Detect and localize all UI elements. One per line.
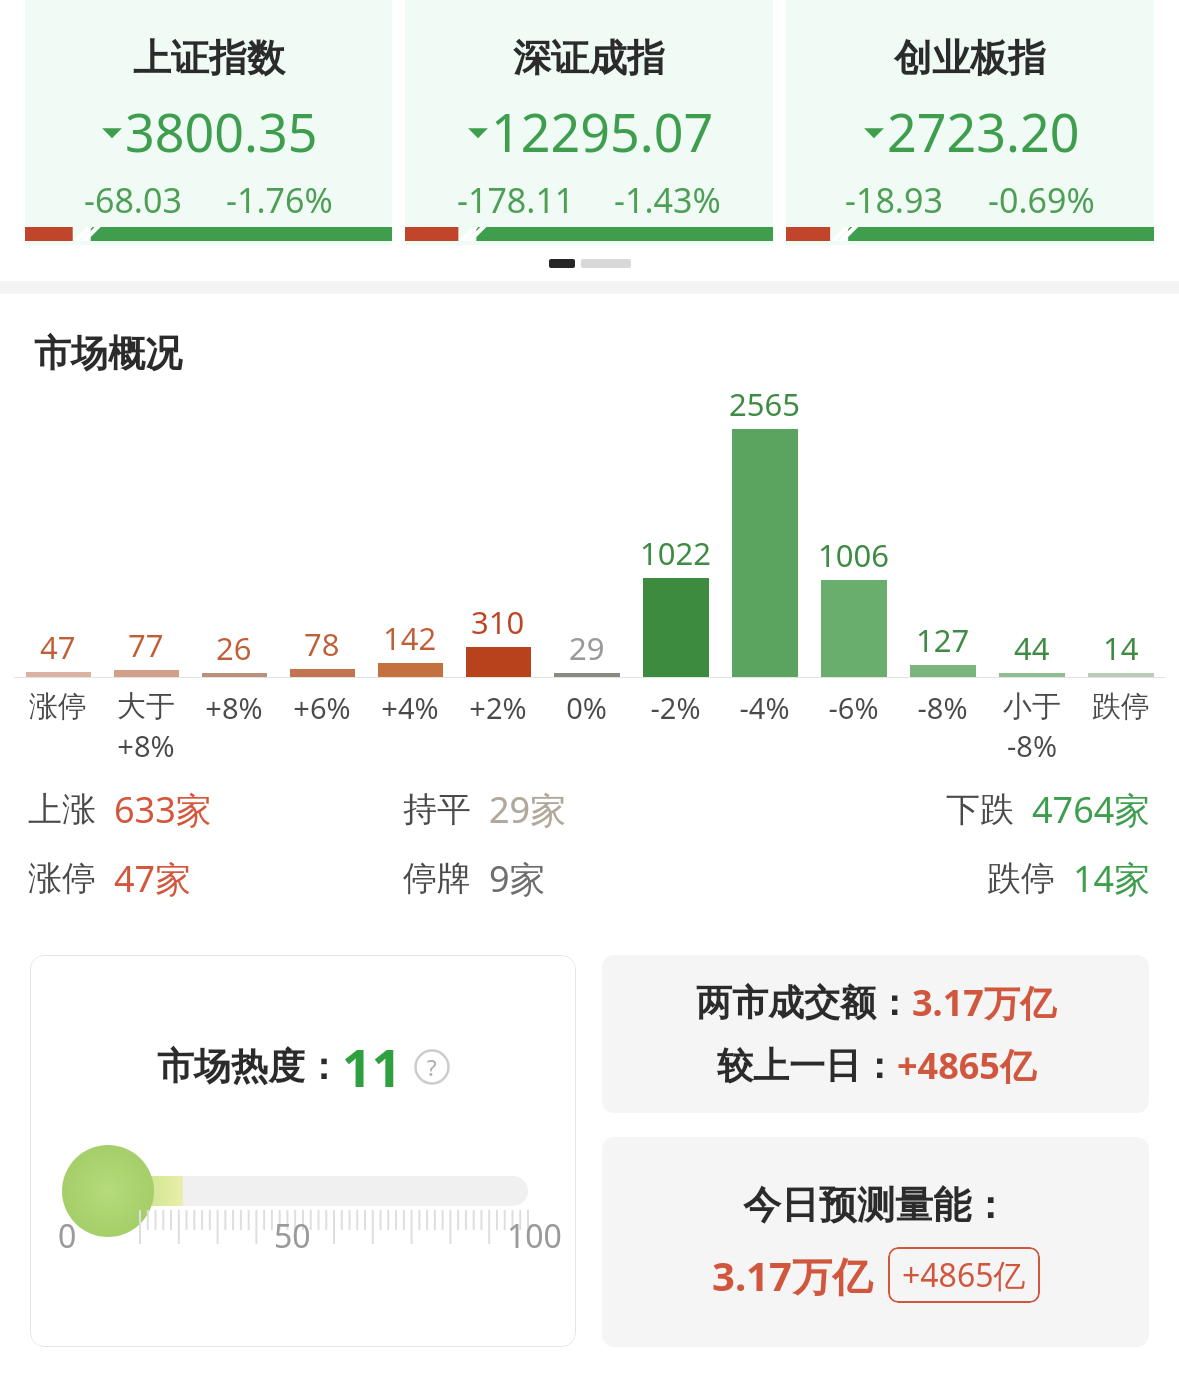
staticText: 创业板指: [894, 34, 1046, 82]
staticText: 0: [58, 1214, 77, 1258]
staticText: 100: [507, 1214, 562, 1258]
staticText: 47家: [114, 854, 192, 903]
staticText: -1.76%: [226, 177, 333, 223]
staticText: 小于 -8%: [1003, 688, 1061, 765]
staticText: -6%: [828, 688, 879, 727]
staticText: 29: [569, 627, 605, 669]
staticText: 142: [383, 617, 437, 659]
button[interactable]: 今日预测量能：: [602, 1137, 1149, 1347]
staticText: 跌停: [1092, 688, 1150, 725]
staticText: 3.17万亿: [712, 1248, 872, 1303]
staticText: 上证指数: [133, 34, 285, 82]
staticText: 12295.07: [491, 96, 714, 167]
staticText: -18.93: [845, 177, 943, 223]
staticText: 涨停: [29, 688, 87, 725]
staticText: +4865亿: [897, 1041, 1036, 1090]
staticText: 市场概况: [34, 330, 182, 377]
staticText: -178.11: [457, 177, 575, 223]
staticText: 涨停: [28, 857, 96, 900]
staticText: -8%: [917, 688, 968, 727]
staticText: 深证成指: [513, 34, 665, 82]
staticText: 持平: [403, 788, 471, 831]
staticText: 77: [128, 624, 164, 666]
staticText: 14: [1103, 627, 1139, 669]
staticText: 2565: [729, 383, 800, 425]
staticText: 2723.20: [887, 96, 1080, 167]
staticText: 127: [916, 619, 970, 661]
button[interactable]: 两市成交额：: [602, 955, 1149, 1113]
staticText: 1022: [640, 532, 711, 574]
staticText: +6%: [293, 688, 351, 727]
staticText: 11: [342, 1031, 402, 1102]
staticText: 大于 +8%: [117, 688, 175, 765]
button[interactable]: 深证成指: [405, 0, 773, 245]
staticText: 3.17万亿: [912, 978, 1056, 1027]
staticText: +4865亿: [902, 1253, 1026, 1297]
staticText: 44: [1014, 627, 1050, 669]
staticText: 14家: [1073, 854, 1151, 903]
staticText: 0%: [566, 688, 607, 727]
staticText: 两市成交额：: [696, 980, 912, 1025]
staticText: 跌停: [987, 857, 1055, 900]
staticText: 1006: [818, 534, 889, 576]
staticText: -1.43%: [614, 177, 721, 223]
staticText: +4%: [381, 688, 439, 727]
staticText: 3800.35: [125, 96, 318, 167]
staticText: 29家: [489, 785, 567, 834]
staticText: -0.69%: [988, 177, 1095, 223]
staticText: 50: [274, 1214, 311, 1258]
staticText: 下跌: [946, 788, 1014, 831]
staticText: 今日预测量能：: [743, 1181, 1009, 1229]
button[interactable]: 说明: [414, 1049, 450, 1085]
staticText: -68.03: [84, 177, 182, 223]
button[interactable]: 创业板指: [786, 0, 1154, 245]
staticText: 310: [471, 601, 525, 643]
staticText: 上涨: [28, 788, 96, 831]
staticText: 停牌: [403, 857, 471, 900]
staticText: -2%: [650, 688, 701, 727]
button[interactable]: 上证指数: [25, 0, 392, 245]
staticText: 78: [304, 623, 340, 665]
staticText: 较上一日：: [717, 1043, 897, 1088]
button[interactable]: 市场热度：: [30, 955, 576, 1347]
staticText: +8%: [205, 688, 263, 727]
staticText: 4764家: [1032, 785, 1151, 834]
staticText: 633家: [114, 785, 212, 834]
staticText: 47: [40, 626, 76, 668]
staticText: 9家: [489, 854, 546, 903]
staticText: ?: [427, 1052, 437, 1082]
staticText: 市场热度：: [157, 1043, 342, 1090]
staticText: -4%: [739, 688, 790, 727]
staticText: +2%: [469, 688, 527, 727]
staticText: 26: [216, 627, 252, 669]
